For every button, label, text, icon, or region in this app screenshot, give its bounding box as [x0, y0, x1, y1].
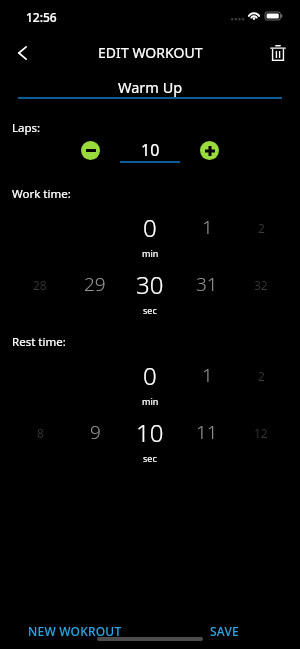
staticText: 8 — [37, 425, 44, 441]
staticText: 12:56 — [26, 9, 57, 25]
staticText: 2 — [258, 220, 265, 236]
button[interactable]: NEW WOKROUT — [28, 623, 122, 639]
staticText: min — [142, 395, 159, 407]
staticText: 32 — [254, 277, 268, 293]
staticText: sec — [143, 452, 157, 464]
staticText: Rest time: — [12, 334, 66, 350]
staticText: 2 — [258, 368, 265, 384]
staticText: 0 — [143, 359, 157, 392]
staticText: Warm Up — [118, 77, 183, 97]
staticText: sec — [143, 304, 157, 316]
staticText: 28 — [33, 277, 47, 293]
staticText: 10 — [141, 139, 160, 161]
staticText: 31 — [196, 271, 218, 297]
staticText: EDIT WORKOUT — [98, 43, 203, 62]
staticText: 30 — [136, 268, 164, 301]
button[interactable]: Delete workout — [256, 31, 300, 75]
staticText: 1 — [202, 362, 213, 388]
staticText: SAVE — [210, 623, 239, 639]
button[interactable]: Back — [0, 31, 44, 75]
button[interactable]: Decrease laps — [81, 141, 100, 160]
button[interactable]: SAVE — [210, 623, 239, 639]
staticText: 10 — [136, 416, 164, 449]
staticText: 12 — [254, 425, 268, 441]
staticText: 29 — [84, 271, 106, 297]
staticText: 9 — [90, 419, 101, 445]
staticText: 0 — [143, 211, 157, 244]
staticText: NEW WOKROUT — [28, 623, 122, 639]
staticText: Laps: — [12, 120, 41, 136]
staticText: min — [142, 247, 159, 259]
staticText: Work time: — [12, 186, 71, 202]
button[interactable]: Increase laps — [200, 141, 219, 160]
staticText: 11 — [196, 419, 218, 445]
staticText: 1 — [202, 214, 213, 240]
